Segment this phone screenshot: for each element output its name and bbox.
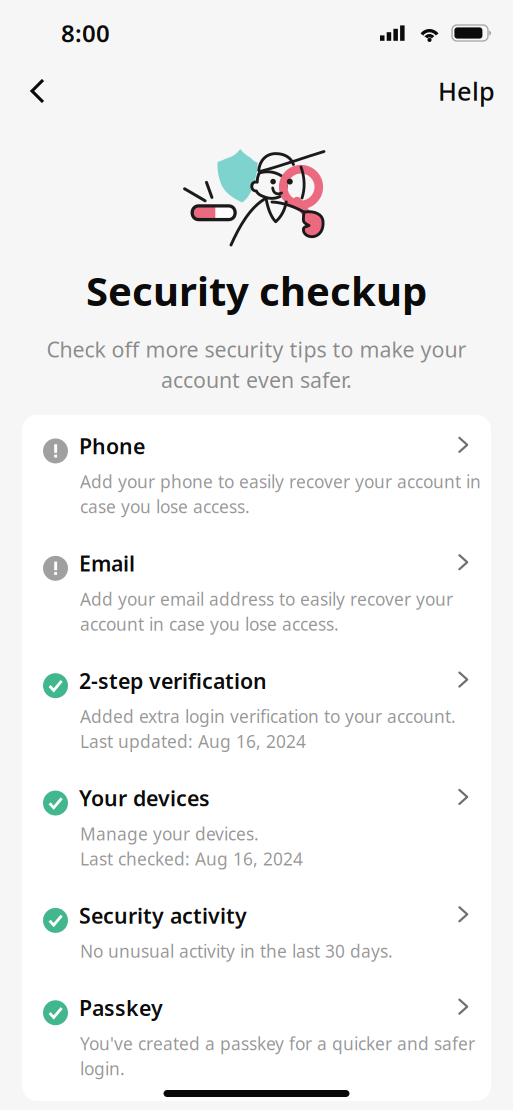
staticText: You've created a passkey for a quicker a… [80,1032,475,1055]
button[interactable]: Passkey [22,984,491,1101]
staticText: Added extra login verification to your a… [80,705,456,728]
staticText: 8:00 [61,17,110,49]
staticText: Email [79,549,135,577]
staticText: 2-step verification [79,666,267,695]
staticText: Last updated: Aug 16, 2024 [80,730,306,753]
button[interactable]: Phone [22,415,491,539]
button[interactable]: 2-step verification [22,656,491,774]
button[interactable]: Security activity [22,891,491,983]
staticText: Passkey [79,994,163,1022]
staticText: case you lose access. [80,495,250,518]
button[interactable]: Help [428,65,505,117]
button[interactable]: Your devices [22,774,491,891]
staticText: Last checked: Aug 16, 2024 [80,847,303,870]
button[interactable]: Email [22,539,491,656]
staticText: Security activity [79,901,247,929]
staticText: account in case you lose access. [80,612,339,635]
staticText: No unusual activity in the last 30 days. [80,940,393,963]
staticText: Manage your devices. [80,822,259,845]
staticText: Your devices [79,784,210,812]
staticText: Help [438,74,495,108]
staticText: Check off more security tips to make you… [46,335,466,363]
staticText: Add your phone to easily recover your ac… [80,470,481,493]
staticText: account even safer. [161,365,352,394]
staticText: Phone [79,432,145,460]
staticText: Add your email address to easily recover… [80,587,453,610]
staticText: Security checkup [86,264,427,317]
button[interactable]: Back [14,67,60,115]
staticText: login. [80,1057,125,1080]
